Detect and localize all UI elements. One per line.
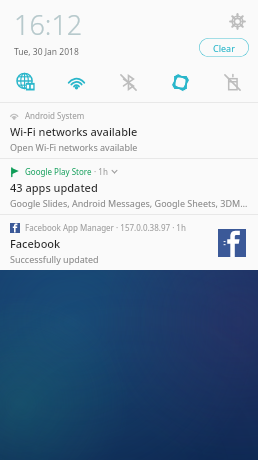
staticText: 16:12 xyxy=(14,6,83,43)
button[interactable]: Android System xyxy=(0,103,258,158)
button[interactable]: Auto rotate xyxy=(154,62,206,102)
staticText: Open Wi-Fi networks available xyxy=(10,141,138,153)
staticText: 43 apps updated xyxy=(10,180,98,195)
button[interactable]: Flashlight xyxy=(206,62,258,102)
staticText: Android System xyxy=(25,110,85,121)
staticText: · 157.0.0.38.97 · 1h xyxy=(114,222,186,233)
staticText: Google Slides, Android Messages, Google … xyxy=(10,197,248,209)
button[interactable]: Mobile data xyxy=(0,62,51,102)
staticText: Clear xyxy=(213,42,235,54)
button[interactable]: Google Play Store xyxy=(0,159,258,214)
staticText: Wi-Fi networks available xyxy=(10,124,138,139)
button[interactable]: Settings xyxy=(224,8,250,34)
staticText: Facebook xyxy=(10,236,61,251)
button[interactable]: Clear xyxy=(199,38,249,57)
staticText: · 1h xyxy=(92,166,108,177)
button[interactable]: Facebook App Manager xyxy=(0,215,258,270)
staticText: Successfully updated xyxy=(10,253,99,265)
staticText: Tue, 30 Jan 2018 xyxy=(14,46,79,58)
button[interactable]: Wi-Fi xyxy=(51,62,102,102)
staticText: Google Play Store xyxy=(25,166,92,177)
button[interactable]: Bluetooth xyxy=(102,62,154,102)
staticText: Facebook App Manager xyxy=(25,222,114,233)
